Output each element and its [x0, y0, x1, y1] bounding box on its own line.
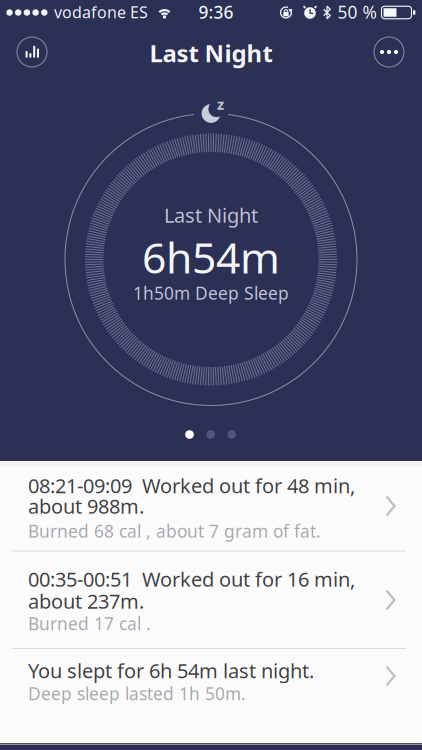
button[interactable]: More [372, 35, 406, 69]
staticText: 50 % [337, 0, 376, 23]
staticText: 1h50m Deep Sleep [133, 281, 289, 304]
staticText: about 988m. [28, 493, 144, 519]
staticText: Burned 17 cal . [28, 612, 151, 635]
staticText: Last Night [149, 37, 272, 69]
staticText: You slept for 6h 54m last night. [28, 657, 314, 684]
staticText: Last Night [164, 202, 258, 228]
staticText: vodafone ES [54, 1, 148, 23]
staticText: 08:21-09:09 Worked out for 48 min, [28, 472, 355, 499]
button[interactable]: 08:21-09:09 Worked out for 48 min, [0, 461, 422, 551]
staticText: 00:35-00:51 Worked out for 16 min, [28, 566, 355, 592]
staticText: about 237m. [28, 588, 144, 614]
staticText: 9:36 [198, 0, 233, 23]
button[interactable]: You slept for 6h 54m last night. [0, 648, 422, 743]
staticText: Burned 68 cal , about 7 gram of fat. [28, 519, 321, 542]
button[interactable]: 00:35-00:51 Worked out for 16 min, [0, 551, 422, 648]
button[interactable]: Statistics [15, 35, 49, 69]
staticText: z [217, 94, 224, 114]
staticText: Deep sleep lasted 1h 50m. [28, 682, 246, 705]
staticText: 6h54m [142, 229, 280, 285]
